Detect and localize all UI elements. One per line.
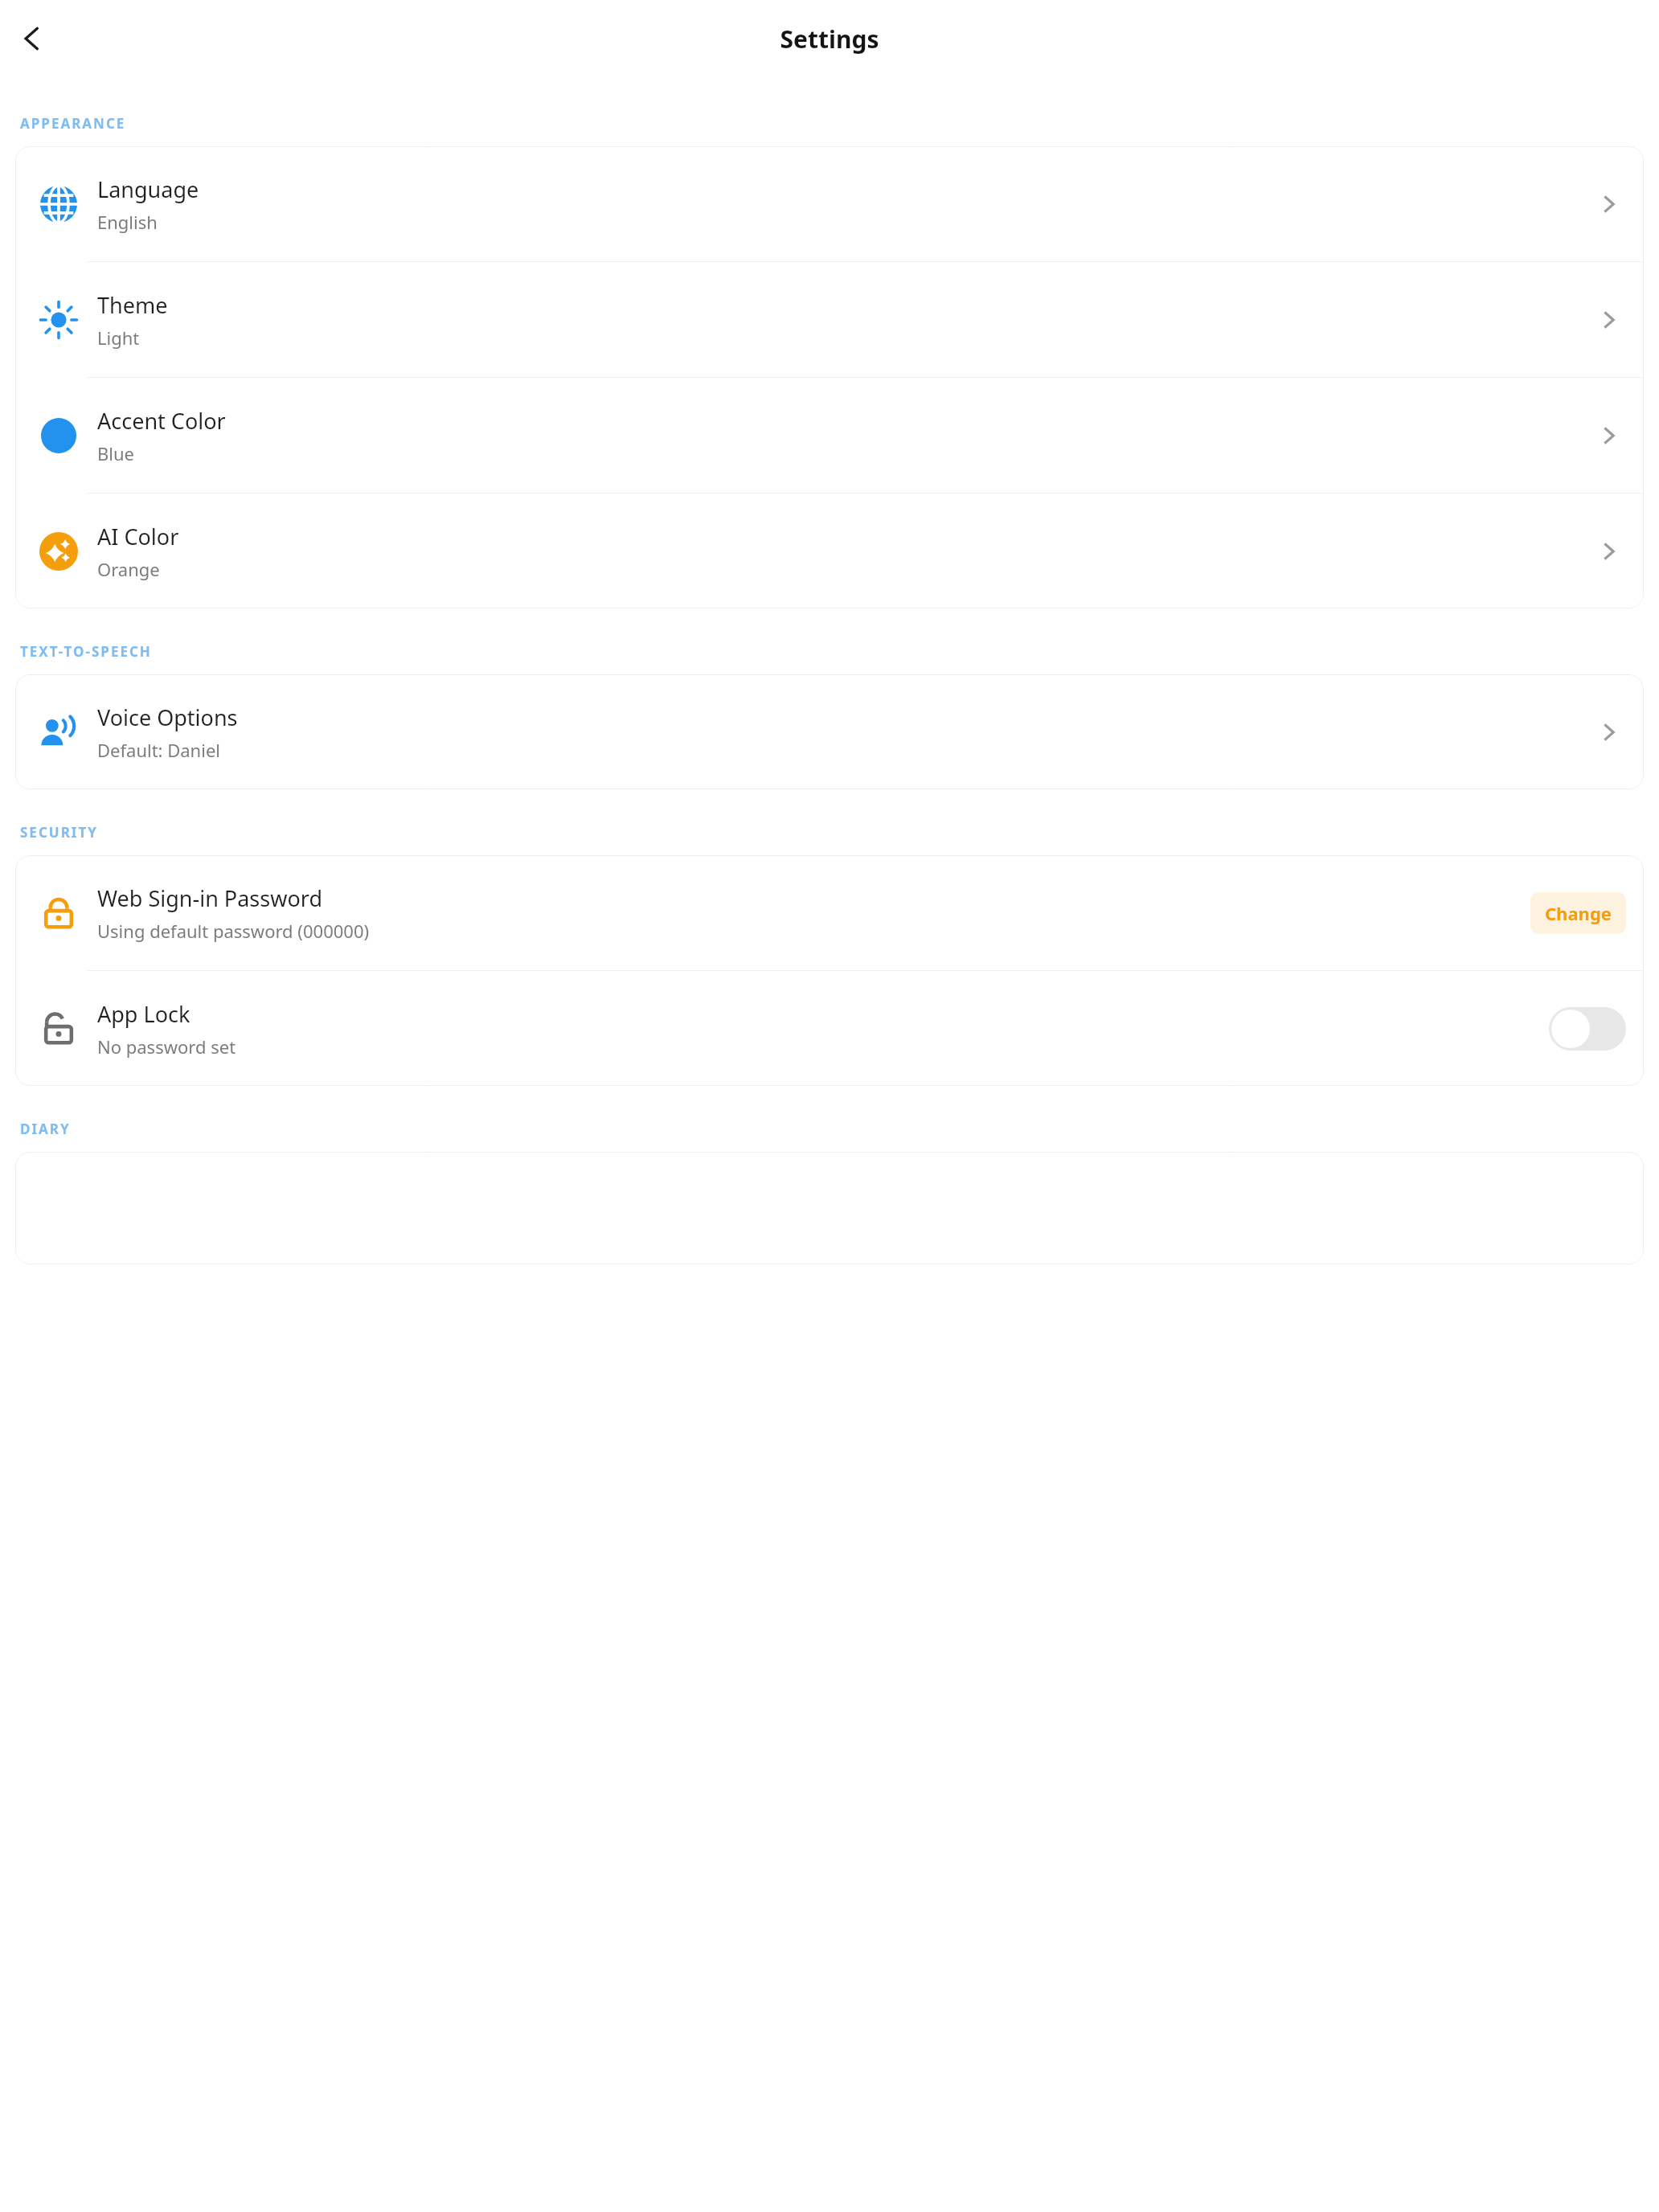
staticText: Settings [0, 23, 1659, 55]
staticText: Blue [97, 441, 134, 465]
button[interactable]: Voice Options [15, 674, 1644, 789]
staticText: DIARY [20, 1120, 71, 1138]
staticText: Orange [97, 557, 160, 581]
button[interactable]: Back [10, 16, 55, 61]
button[interactable]: Accent Color [15, 378, 1644, 493]
button[interactable]: App Lock toggle [1549, 1007, 1626, 1051]
staticText: TEXT-TO-SPEECH [20, 642, 152, 661]
button[interactable]: Language [15, 146, 1644, 261]
staticText: APPEARANCE [20, 114, 126, 133]
staticText: Change [1545, 901, 1612, 925]
staticText: Accent Color [97, 406, 226, 436]
staticText: Light [97, 326, 140, 350]
staticText: Language [97, 174, 199, 204]
button[interactable]: Theme [15, 262, 1644, 377]
staticText: SECURITY [20, 823, 98, 842]
button[interactable]: Web Sign-in Password [15, 855, 1644, 970]
staticText: English [97, 210, 158, 234]
staticText: No password set [97, 1034, 236, 1059]
staticText: Voice Options [97, 703, 238, 732]
staticText: AI Color [97, 522, 179, 551]
button[interactable]: Change [1530, 892, 1626, 934]
button[interactable]: AI Color [15, 494, 1644, 608]
staticText: App Lock [97, 999, 190, 1029]
button[interactable]: App Lock [15, 971, 1644, 1086]
staticText: Theme [97, 290, 168, 320]
staticText: Web Sign-in Password [97, 883, 322, 913]
staticText: Default: Daniel [97, 738, 220, 762]
staticText: Using default password (000000) [97, 919, 370, 943]
